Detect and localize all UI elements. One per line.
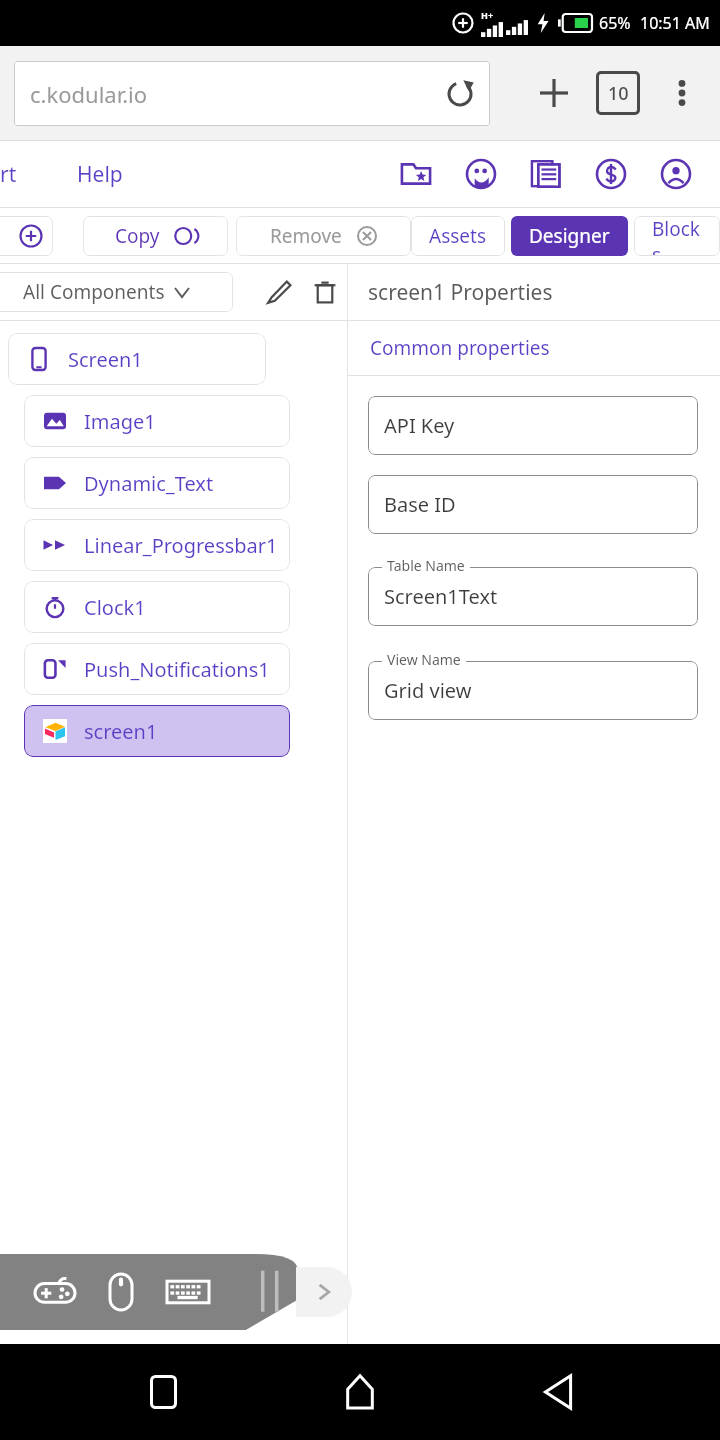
staticText: API Key — [384, 412, 455, 439]
staticText: Blocks — [652, 216, 702, 256]
button[interactable]: Clock1 — [24, 581, 290, 633]
button[interactable]: Designer — [511, 216, 628, 256]
staticText: 10:51 AM — [640, 12, 710, 34]
button[interactable]: All Components — [0, 272, 233, 312]
button[interactable]: Delete — [303, 268, 347, 316]
staticText: View Name — [387, 650, 461, 669]
button[interactable]: Screen1Text — [368, 567, 698, 626]
staticText: rt — [0, 160, 17, 189]
button[interactable]: Copy — [83, 216, 228, 256]
button[interactable]: Common properties — [348, 321, 720, 375]
button[interactable]: Blocks — [634, 216, 720, 256]
button[interactable]: Add component — [0, 216, 53, 256]
button[interactable]: Mouse — [95, 1266, 147, 1318]
button[interactable]: screen1 — [24, 705, 290, 757]
button[interactable]: Back — [523, 1357, 593, 1427]
staticText: Screen1 — [68, 346, 143, 373]
button[interactable]: Rename — [255, 268, 303, 316]
staticText: 10 — [608, 81, 629, 106]
button[interactable]: Grid view — [368, 661, 698, 720]
button[interactable]: Keyboard — [162, 1266, 214, 1318]
button[interactable]: Push_Notifications1 — [24, 643, 290, 695]
button[interactable]: c.kodular.io — [14, 61, 490, 126]
button[interactable]: Base ID — [368, 475, 698, 534]
button[interactable]: Expand toolbar — [296, 1267, 352, 1317]
button[interactable]: Gamepad — [29, 1266, 81, 1318]
button[interactable]: Linear_Progressbar1 — [24, 519, 290, 571]
staticText: c.kodular.io — [30, 79, 446, 109]
staticText: Base ID — [384, 491, 456, 518]
staticText: Grid view — [384, 677, 472, 704]
staticText: Help — [77, 160, 123, 189]
staticText: screen1 Properties — [368, 278, 553, 307]
staticText: 65% — [599, 12, 631, 34]
button[interactable]: API Key — [368, 396, 698, 455]
button[interactable]: Assets — [411, 216, 505, 256]
staticText: Remove — [270, 223, 342, 249]
button[interactable]: Community — [448, 144, 513, 204]
staticText: Dynamic_Text — [84, 470, 214, 497]
staticText: All Components — [23, 279, 165, 305]
staticText: H+ — [481, 9, 494, 21]
button[interactable]: Recent apps — [128, 1357, 198, 1427]
other: Reload — [446, 80, 474, 108]
staticText: Clock1 — [84, 594, 146, 621]
button[interactable]: New tab — [526, 65, 582, 121]
button[interactable]: Image1 — [24, 395, 290, 447]
button[interactable]: Dynamic_Text — [24, 457, 290, 509]
button[interactable]: Tabs — [596, 71, 640, 115]
staticText: Table Name — [387, 556, 465, 575]
button[interactable]: Home — [325, 1357, 395, 1427]
button[interactable]: Screen1 — [8, 333, 266, 385]
button[interactable]: Projects — [383, 144, 448, 204]
button[interactable]: Documentation — [513, 144, 578, 204]
button[interactable]: rt — [0, 160, 29, 189]
staticText: Copy — [115, 223, 160, 249]
staticText: Assets — [429, 223, 487, 249]
staticText: Linear_Progressbar1 — [84, 532, 278, 559]
staticText: Push_Notifications1 — [84, 656, 270, 683]
staticText: Image1 — [84, 408, 156, 435]
staticText: Screen1Text — [384, 583, 498, 610]
staticText: Designer — [529, 223, 610, 249]
staticText: screen1 — [84, 718, 158, 745]
button[interactable]: Help — [69, 160, 131, 189]
staticText: Common properties — [370, 335, 550, 361]
button[interactable]: Monetization — [578, 144, 643, 204]
button[interactable]: More options — [654, 65, 710, 121]
button[interactable]: Account — [643, 144, 708, 204]
button[interactable]: Remove — [236, 216, 411, 256]
